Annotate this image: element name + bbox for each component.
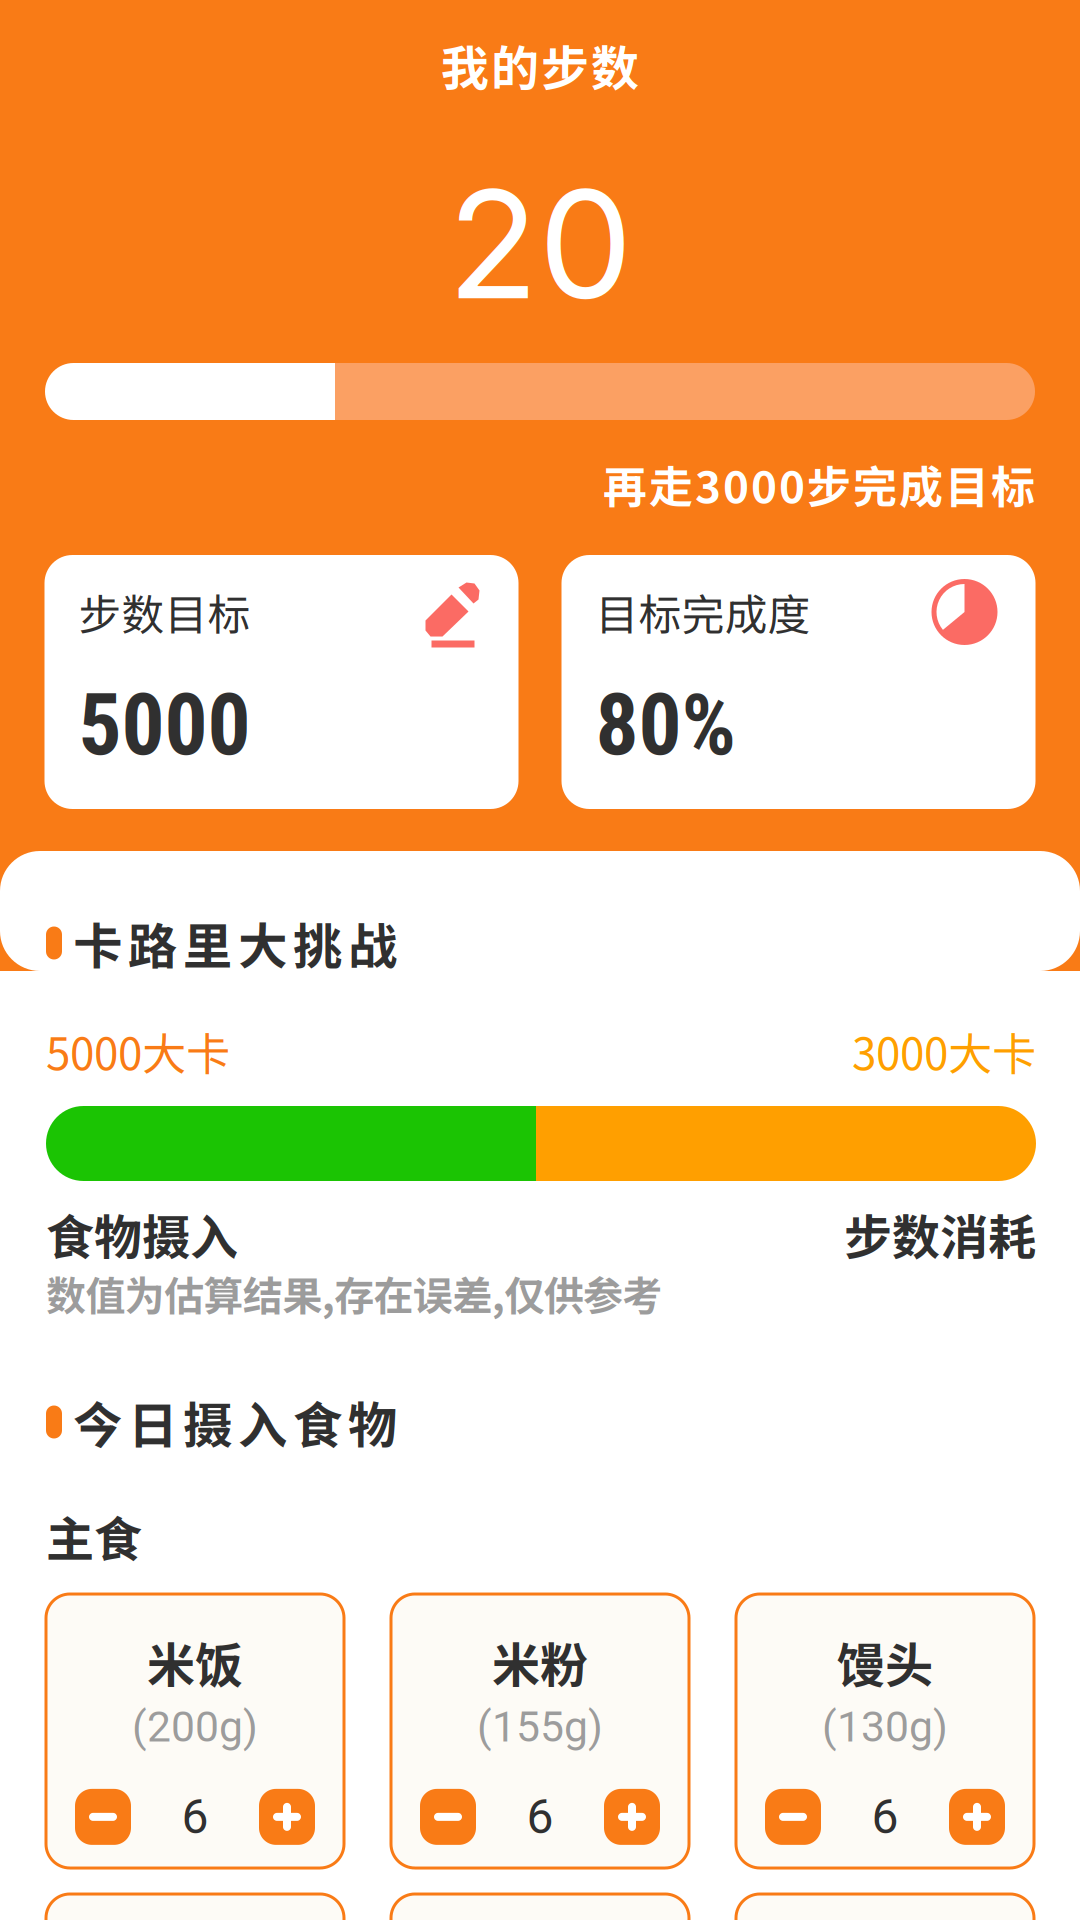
button[interactable]: Decrease 馒头 [765,1789,821,1845]
button[interactable]: Decrease 米饭 [75,1789,131,1845]
button[interactable]: Increase 米饭 [259,1789,315,1845]
staticText: 数值为估算结果,存在误差,仅供参考 [46,1264,662,1322]
staticText: 5000大卡 [46,1019,230,1083]
staticText: 6 [871,1789,898,1845]
staticText: (130g) [822,1702,948,1752]
staticText: 馒头 [837,1627,933,1697]
button[interactable]: Increase 馒头 [949,1789,1005,1845]
staticText: 主食 [46,1501,142,1571]
staticText: (155g) [477,1702,603,1752]
staticText: 3000大卡 [852,1019,1036,1083]
staticText: 20 [447,154,632,334]
staticText: 我的步数 [441,30,639,100]
staticText: 80% [595,675,735,775]
staticText: 5000 [78,675,250,775]
button[interactable]: Decrease 米粉 [420,1789,476,1845]
staticText: 6 [181,1789,208,1845]
staticText: 步数目标 [78,581,250,643]
staticText: 米粉 [492,1627,588,1697]
staticText: 今日摄入食物 [73,1386,397,1458]
staticText: 目标完成度 [595,581,810,643]
staticText: 食物摄入 [46,1199,238,1269]
staticText: 再走3000步完成目标 [603,452,1035,516]
staticText: (200g) [132,1702,258,1752]
staticText: 米饭 [147,1627,243,1697]
staticText: 卡路里大挑战 [73,907,397,979]
button[interactable]: Increase 米粉 [604,1789,660,1845]
staticText: 步数消耗 [844,1199,1036,1269]
button[interactable]: 步数目标 [44,555,518,809]
button[interactable]: 目标完成度 [561,555,1035,809]
staticText: 6 [526,1789,553,1845]
